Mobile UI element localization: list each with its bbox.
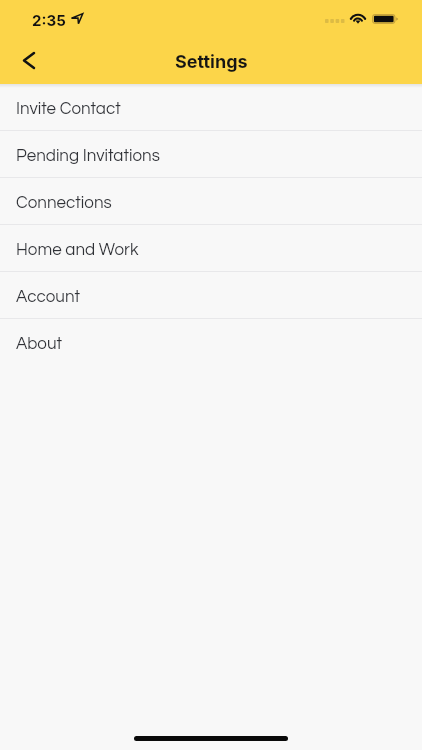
button[interactable]: Back (5, 36, 53, 84)
button[interactable]: Pending Invitations (0, 131, 422, 178)
staticText: Pending Invitations (16, 147, 160, 165)
staticText: Invite Contact (16, 100, 121, 118)
button[interactable]: Invite Contact (0, 84, 422, 131)
button[interactable]: Home and Work (0, 225, 422, 272)
staticText: Settings (175, 51, 248, 73)
staticText: Connections (16, 194, 112, 212)
staticText: 2:35 (32, 11, 66, 29)
staticText: About (16, 335, 63, 353)
button[interactable]: About (0, 319, 422, 366)
staticText: Account (16, 288, 80, 306)
button[interactable]: Account (0, 272, 422, 319)
staticText: Home and Work (16, 241, 139, 259)
button[interactable]: Connections (0, 178, 422, 225)
